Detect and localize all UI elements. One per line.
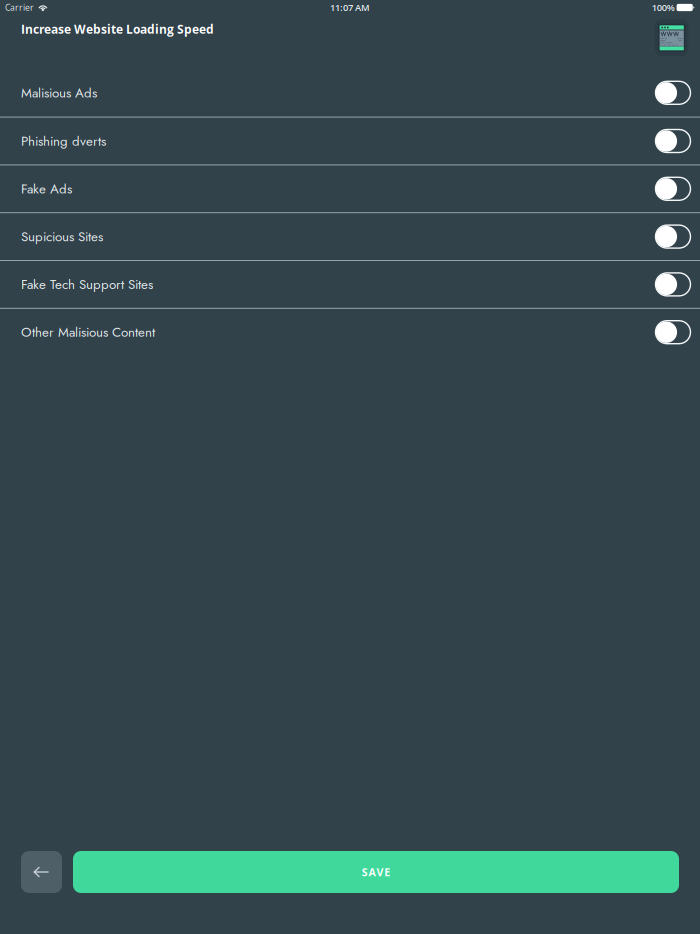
button[interactable]: Fake Tech Support Sites — [0, 261, 700, 308]
staticText: 11:07 AM — [330, 1, 370, 14]
staticText: Malisious Ads — [21, 83, 97, 102]
staticText: Fake Ads — [21, 179, 72, 198]
staticText: Phishing dverts — [21, 131, 106, 151]
button[interactable]: Other Malisious Content — [0, 309, 700, 356]
button[interactable]: Supicious Sites — [0, 213, 700, 260]
button[interactable]: Phishing dverts — [0, 118, 700, 164]
staticText: Increase Website Loading Speed — [21, 21, 214, 37]
staticText: Fake Tech Support Sites — [21, 275, 153, 294]
button[interactable]: Back — [21, 851, 62, 893]
staticText: Other Malisious Content — [21, 323, 155, 342]
staticText: SAVE — [362, 865, 390, 879]
button[interactable]: SAVE — [73, 851, 679, 893]
staticText: Carrier — [5, 2, 34, 13]
button[interactable]: Fake Ads — [0, 165, 700, 212]
staticText: Supicious Sites — [21, 227, 103, 246]
staticText: 100% — [652, 1, 675, 14]
button[interactable]: Website — [655, 19, 688, 56]
button[interactable]: Malisious Ads — [0, 69, 700, 117]
